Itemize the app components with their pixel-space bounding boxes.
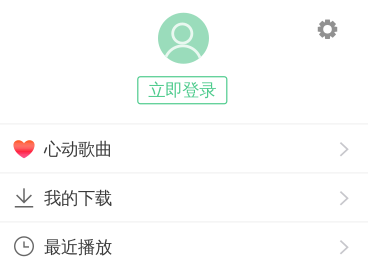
button[interactable]: 心动歌曲 <box>0 125 368 174</box>
button[interactable]: 最近播放 <box>0 223 368 268</box>
staticText: 立即登录 <box>148 80 216 101</box>
button[interactable]: 我的下载 <box>0 174 368 223</box>
staticText: 心动歌曲 <box>44 139 112 160</box>
staticText: 我的下载 <box>44 188 112 209</box>
button[interactable]: Settings <box>310 12 344 46</box>
staticText: 最近播放 <box>44 237 112 258</box>
button[interactable]: 立即登录 <box>138 77 227 104</box>
